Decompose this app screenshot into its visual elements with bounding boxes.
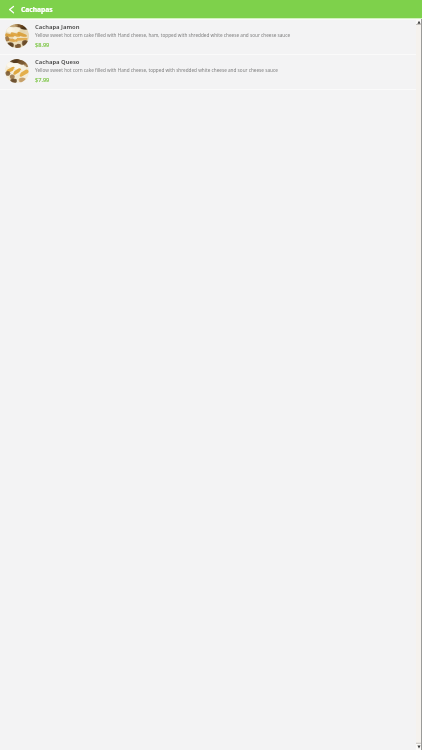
- button[interactable]: Scroll: [416, 19, 422, 750]
- staticText: Cachapa Queso: [35, 58, 80, 66]
- staticText: Yellow sweet hot corn cake filled with H…: [35, 67, 278, 73]
- button[interactable]: Cachapa Jamon: [0, 20, 422, 54]
- staticText: Cachapas: [21, 5, 53, 14]
- staticText: Yellow sweet hot corn cake filled with H…: [35, 32, 291, 38]
- button[interactable]: Back: [0, 0, 21, 18]
- staticText: Cachapa Jamon: [35, 23, 80, 31]
- staticText: $7.99: [35, 76, 50, 84]
- staticText: $8.99: [35, 41, 50, 49]
- button[interactable]: Cachapa Queso: [0, 55, 422, 89]
